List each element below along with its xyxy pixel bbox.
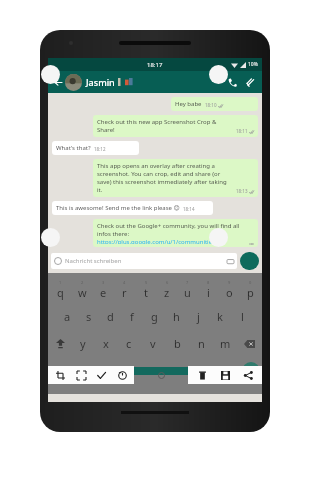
- button[interactable]: Delete: [193, 366, 211, 384]
- button[interactable]: l: [231, 303, 253, 330]
- staticText: 3: [102, 280, 105, 285]
- button[interactable]: x: [94, 330, 117, 357]
- button[interactable]: Shift: [49, 330, 71, 357]
- button[interactable]: 0: [240, 276, 261, 303]
- staticText: o: [226, 285, 233, 300]
- button[interactable]: 1: [49, 276, 71, 303]
- button[interactable]: 7: [177, 276, 198, 303]
- button[interactable]: This is awesome! Send me the link please…: [52, 201, 213, 215]
- button[interactable]: Crop handle: [209, 65, 228, 84]
- button[interactable]: 8: [198, 276, 219, 303]
- button[interactable]: h: [165, 303, 187, 330]
- button[interactable]: m: [213, 330, 237, 357]
- button[interactable]: Crop handle: [41, 228, 60, 247]
- staticText: f: [130, 309, 134, 324]
- staticText: 6: [166, 280, 169, 285]
- staticText: t: [144, 285, 148, 300]
- button[interactable]: Backspace: [237, 330, 261, 357]
- staticText: k: [217, 309, 223, 324]
- staticText: q: [57, 285, 64, 300]
- staticText: g: [151, 309, 158, 324]
- button[interactable]: y: [71, 330, 94, 357]
- button[interactable]: 5: [135, 276, 156, 303]
- staticText: 5: [145, 280, 148, 285]
- button[interactable]: ,: [76, 357, 88, 384]
- button[interactable]: Enter: [242, 362, 260, 380]
- staticText: 1: [59, 280, 62, 285]
- staticText: .: [234, 365, 237, 377]
- staticText: This app opens an overlay after creating…: [97, 162, 233, 194]
- staticText: y: [80, 336, 86, 351]
- staticText: s: [86, 309, 92, 324]
- button[interactable]: 9: [219, 276, 240, 303]
- button[interactable]: a: [57, 303, 78, 330]
- button[interactable]: Back: [51, 75, 65, 89]
- staticText: Check out this new app Screenshot Crop &…: [97, 118, 233, 134]
- button[interactable]: s: [78, 303, 99, 330]
- staticText: Jasmin: [86, 76, 115, 88]
- button[interactable]: Send voice message: [240, 252, 259, 270]
- staticText: 18:10: [205, 102, 217, 108]
- button[interactable]: Call: [223, 73, 241, 91]
- button[interactable]: 6: [156, 276, 177, 303]
- button[interactable]: v: [141, 330, 165, 357]
- staticText: 18:17: [147, 61, 163, 69]
- button[interactable]: Save: [216, 366, 234, 384]
- staticText: This is awesome! Send me the link please…: [56, 204, 180, 212]
- button[interactable]: Check out the Google+ community, you wil…: [93, 219, 258, 247]
- button[interactable]: ?123: [50, 357, 76, 384]
- staticText: z: [164, 285, 170, 300]
- button[interactable]: g: [143, 303, 165, 330]
- staticText: 0: [249, 280, 252, 285]
- button[interactable]: n: [189, 330, 213, 357]
- button[interactable]: 2: [71, 276, 93, 303]
- staticText: Check out the Google+ community, you wil…: [97, 222, 254, 238]
- staticText: 7: [186, 280, 189, 285]
- button[interactable]: Check out this new app Screenshot Crop &…: [93, 115, 258, 137]
- staticText: 9: [228, 280, 231, 285]
- button[interactable]: d: [99, 303, 121, 330]
- staticText: p: [247, 285, 254, 300]
- button[interactable]: Fullscreen: [72, 366, 90, 384]
- button[interactable]: Nachricht schreiben: [51, 253, 237, 269]
- staticText: Nachricht schreiben: [65, 257, 122, 265]
- staticText: 18:13: [236, 188, 248, 194]
- button[interactable]: Undo: [113, 366, 131, 384]
- button[interactable]: Space: [88, 367, 228, 375]
- staticText: j: [197, 309, 200, 324]
- button[interactable]: [65, 74, 82, 91]
- button[interactable]: Crop handle: [41, 65, 60, 84]
- staticText: 18:14: [183, 206, 195, 212]
- staticText: l: [241, 309, 244, 324]
- staticText: r: [122, 285, 127, 300]
- staticText: 18:11: [236, 128, 248, 134]
- button[interactable]: 4: [114, 276, 135, 303]
- staticText: 4: [123, 280, 126, 285]
- button[interactable]: c: [117, 330, 141, 357]
- staticText: m: [220, 336, 231, 351]
- staticText: e: [100, 285, 107, 300]
- button[interactable]: What's that?: [52, 141, 139, 155]
- button[interactable]: f: [121, 303, 143, 330]
- button[interactable]: 3: [93, 276, 114, 303]
- staticText: n: [198, 336, 205, 351]
- button[interactable]: k: [209, 303, 231, 330]
- staticText: 18:12: [94, 146, 106, 152]
- staticText: ?123: [57, 367, 70, 375]
- button[interactable]: Share: [239, 366, 257, 384]
- button[interactable]: Hey babe: [171, 97, 258, 111]
- staticText: h: [173, 309, 180, 324]
- button[interactable]: Attach: [241, 73, 259, 91]
- button[interactable]: Crop handle: [209, 228, 228, 247]
- staticText: v: [150, 336, 156, 351]
- staticText: u: [184, 285, 191, 300]
- button[interactable]: .: [228, 357, 242, 384]
- staticText: x: [103, 336, 109, 351]
- button[interactable]: j: [187, 303, 209, 330]
- staticText: a: [64, 309, 71, 324]
- button[interactable]: Crop: [51, 366, 69, 384]
- button[interactable]: Confirm: [92, 366, 110, 384]
- button[interactable]: This app opens an overlay after creating…: [93, 159, 258, 197]
- button[interactable]: b: [165, 330, 189, 357]
- staticText: ,: [81, 365, 84, 377]
